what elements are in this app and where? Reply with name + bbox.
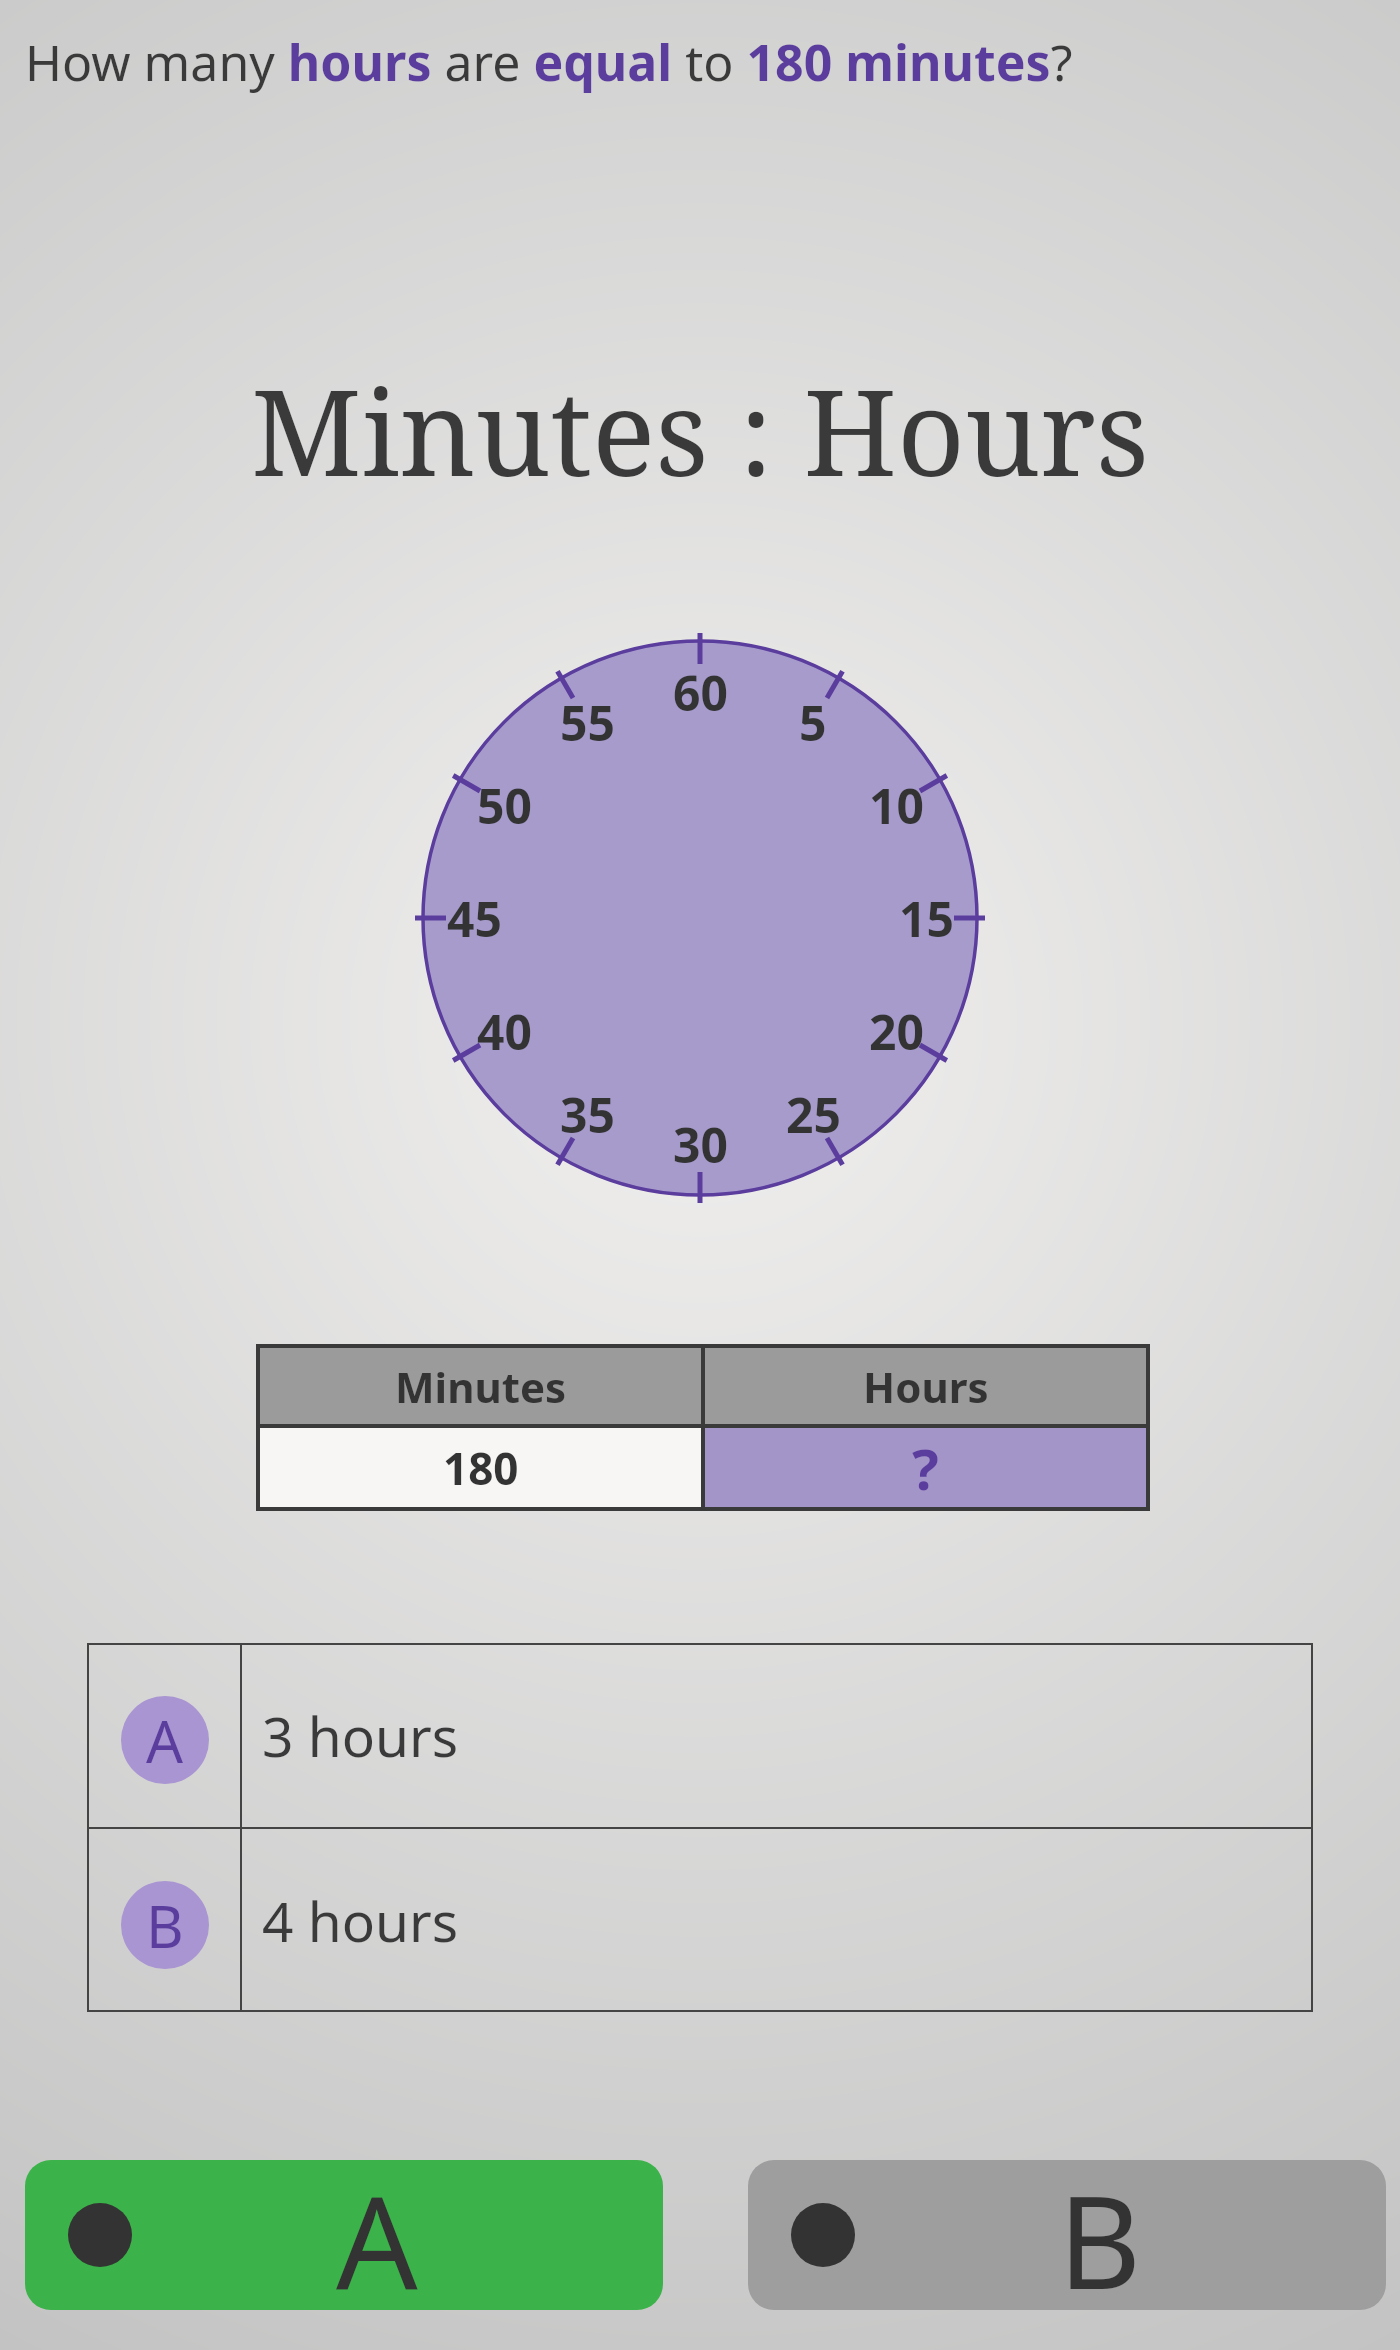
staticText: 180 [443, 1438, 519, 1498]
staticText: 40 [477, 999, 532, 1064]
staticText: Minutes : Hours [251, 350, 1149, 511]
staticText: 60 [673, 660, 728, 725]
staticText: A [336, 2160, 418, 2302]
button[interactable]: A [87, 1643, 1313, 1827]
staticText: 10 [869, 773, 924, 838]
button[interactable]: A [25, 2160, 663, 2310]
staticText: 50 [477, 773, 532, 838]
staticText: 20 [869, 999, 924, 1064]
staticText: 45 [447, 886, 502, 951]
staticText: 4 hours [262, 1883, 459, 1958]
staticText: B [146, 1886, 184, 1965]
button[interactable]: B [748, 2160, 1386, 2310]
staticText: Minutes [395, 1358, 567, 1415]
button[interactable]: B [87, 1828, 1313, 2012]
staticText: 55 [560, 690, 615, 755]
staticText: 35 [560, 1082, 615, 1147]
staticText: A [146, 1701, 184, 1780]
staticText: 15 [899, 886, 954, 951]
staticText: 25 [786, 1082, 841, 1147]
staticText: How many hours are equal to 180 minutes? [25, 28, 1073, 96]
staticText: Hours [863, 1358, 989, 1415]
staticText: 5 [799, 690, 827, 755]
staticText: ? [912, 1430, 939, 1506]
staticText: 3 hours [262, 1698, 459, 1773]
staticText: 30 [673, 1112, 728, 1177]
staticText: B [1058, 2160, 1142, 2302]
